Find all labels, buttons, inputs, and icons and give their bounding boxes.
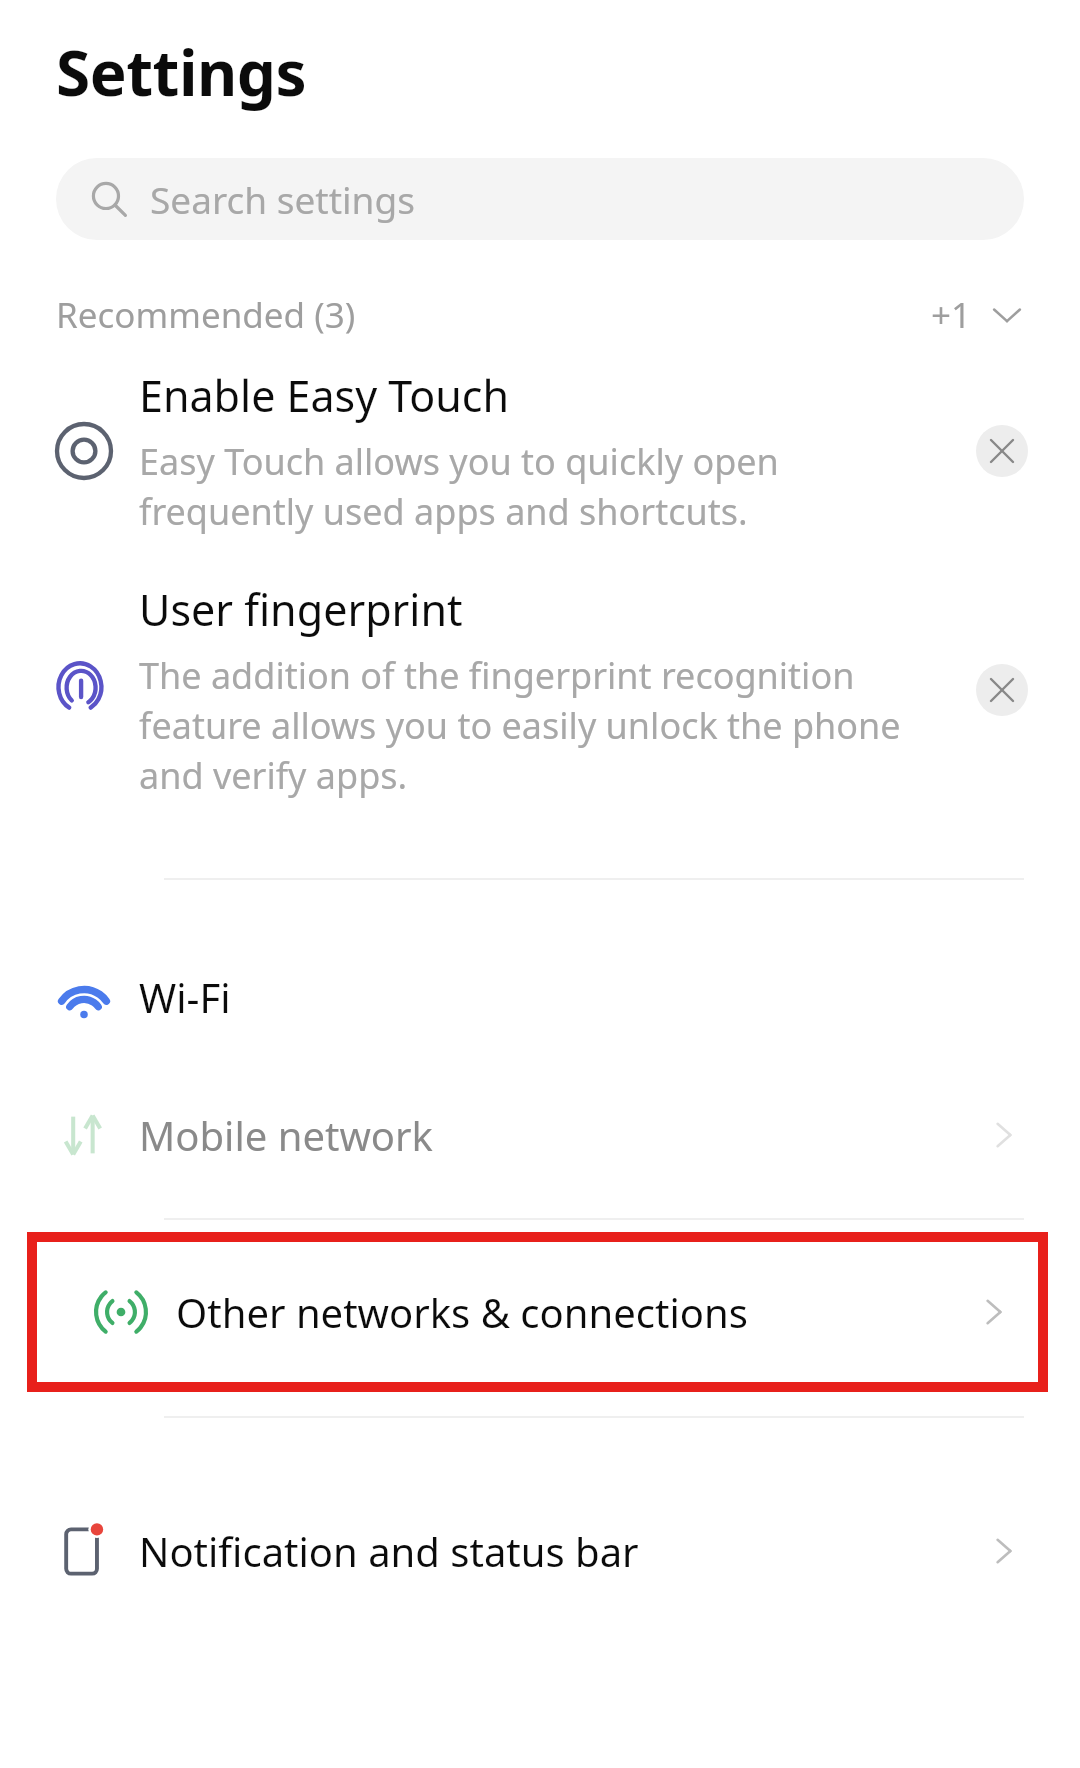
staticText: Other networks & connections [176,1285,748,1339]
staticText: Mobile network [139,1108,433,1162]
other: Notification and status bar [29,1524,139,1578]
button[interactable]: +1 [927,291,1028,339]
button[interactable]: Mobile network [0,1066,1080,1204]
staticText: Enable Easy Touch [139,366,510,425]
button[interactable]: Search settings [56,158,1024,240]
button[interactable]: Other networks & connections [37,1242,1038,1382]
button[interactable]: Dismiss Enable Easy Touch [976,425,1028,477]
other: Wi-Fi [29,968,139,1026]
other: Easy Touch [29,421,139,481]
other: Mobile network [29,1108,139,1162]
staticText: Wi-Fi [139,970,231,1024]
button[interactable]: Fingerprint [0,580,1080,800]
staticText: +1 [931,291,972,339]
staticText: Search settings [150,174,415,224]
button[interactable]: Easy Touch [0,366,1080,536]
staticText: Easy Touch allows you to quickly open fr… [139,437,779,536]
button[interactable]: Dismiss User fingerprint [976,664,1028,716]
staticText: User fingerprint [139,580,463,639]
staticText: Notification and status bar [139,1524,639,1578]
button[interactable]: Wi-Fi [0,928,1080,1066]
other: Fingerprint [29,661,139,719]
button[interactable]: Notification and status bar [0,1482,1080,1620]
staticText: Settings [56,30,307,114]
staticText: The addition of the fingerprint recognit… [139,651,901,800]
staticText: Recommended (3) [56,291,356,339]
other: Expand recommendations [990,298,1024,332]
